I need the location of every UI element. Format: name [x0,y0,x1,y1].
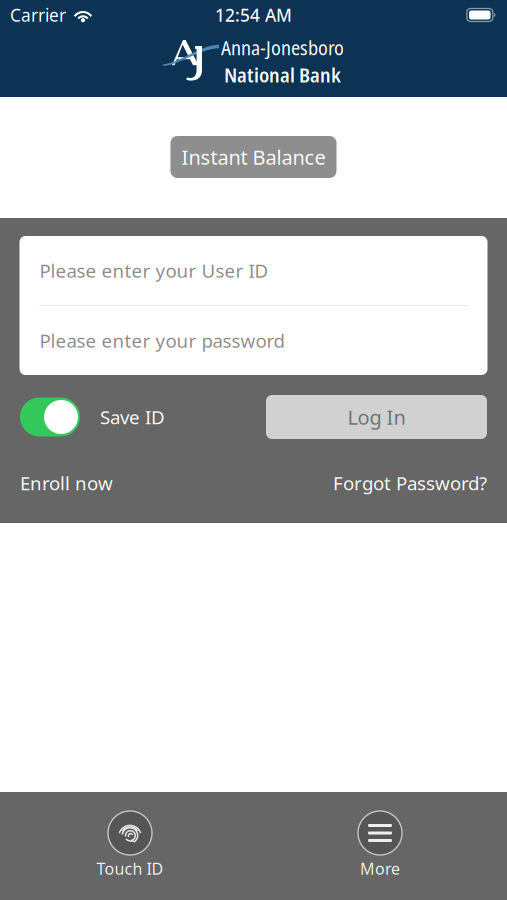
staticText: 12:54 AM [215,3,292,26]
staticText: Instant Balance [181,144,325,170]
button[interactable]: Please enter your password [19,306,487,375]
button[interactable]: Save ID [20,395,165,439]
staticText: Forgot Password? [333,471,487,495]
staticText: Please enter your password [39,328,284,353]
button[interactable]: Please enter your User ID [19,236,487,305]
button[interactable]: Touch ID [82,811,178,879]
staticText: Touch ID [96,858,163,879]
button[interactable]: Instant Balance [170,136,336,178]
staticText: Enroll now [20,471,113,495]
button[interactable]: Forgot Password? [333,470,487,496]
button[interactable]: Log In [266,395,487,439]
staticText: More [360,858,400,879]
button[interactable]: More [332,811,428,879]
staticText: Carrier [10,3,66,26]
staticText: Save ID [100,405,165,429]
staticText: Anna-Jonesboro [221,34,344,61]
staticText: National Bank [224,61,341,88]
staticText: Please enter your User ID [39,258,268,283]
button[interactable]: Enroll now [20,470,113,496]
staticText: Log In [347,404,405,430]
